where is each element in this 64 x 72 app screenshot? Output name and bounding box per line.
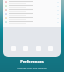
button[interactable] bbox=[3, 8, 61, 12]
staticText: Preferences bbox=[20, 59, 44, 64]
button[interactable] bbox=[3, 20, 61, 24]
staticText: Manage your app settings bbox=[17, 66, 47, 69]
button[interactable] bbox=[3, 4, 61, 8]
button[interactable] bbox=[3, 12, 61, 16]
button[interactable] bbox=[3, 16, 61, 20]
button[interactable] bbox=[3, 0, 61, 4]
